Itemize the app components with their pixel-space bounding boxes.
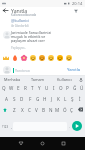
staticText: J (51, 96, 53, 102)
button[interactable]: X (18, 104, 26, 115)
button[interactable]: U (43, 83, 50, 93)
staticText: Kullanıcıadıburada (11, 13, 37, 17)
button[interactable]: V (33, 104, 40, 115)
staticText: L (64, 96, 67, 102)
staticText: @kullanici (11, 18, 30, 23)
button[interactable]: F (26, 93, 34, 104)
button[interactable]: Ğ (71, 83, 78, 93)
button[interactable]: İ (76, 93, 83, 104)
staticText: ?123 (2, 125, 9, 129)
staticText: E (17, 85, 20, 91)
staticText: X (21, 107, 24, 113)
button[interactable]: D (18, 93, 26, 104)
button[interactable]: J (48, 93, 55, 104)
button[interactable]: T (29, 83, 36, 93)
button[interactable]: Shift (0, 104, 10, 115)
button[interactable]: Back (10, 137, 32, 150)
button[interactable]: I (50, 83, 57, 93)
button[interactable]: Ö (61, 104, 68, 115)
staticText: H (43, 96, 47, 102)
staticText: Merhaba (4, 77, 21, 82)
button[interactable]: W (8, 83, 15, 93)
staticText: C (28, 107, 31, 113)
button[interactable]: C (26, 104, 33, 115)
button[interactable]: Kullanıcı (51, 76, 77, 83)
button[interactable]: Ş (69, 93, 76, 104)
staticText: ile Gönderildi (11, 24, 29, 28)
button[interactable]: Emoji (46, 53, 55, 62)
button[interactable]: O (57, 83, 64, 93)
staticText: . (69, 124, 70, 129)
button[interactable]: Ü (78, 83, 85, 93)
staticText: K (57, 96, 60, 102)
staticText: F (29, 96, 32, 102)
button[interactable]: Yanıtla (66, 66, 82, 74)
staticText: Z (13, 107, 16, 113)
staticText: 20:14 (72, 1, 83, 6)
staticText: N (49, 107, 53, 113)
staticText: Paylaşıyor... (11, 46, 27, 50)
button[interactable]: B (40, 104, 47, 115)
button[interactable]: Q (0, 83, 8, 93)
button[interactable]: Ç (68, 104, 75, 115)
button[interactable]: , (9, 122, 13, 131)
button[interactable]: Emoji (19, 53, 28, 62)
button[interactable]: S (10, 93, 18, 104)
button[interactable]: K (55, 93, 62, 104)
button[interactable]: Backspace (75, 104, 85, 115)
button[interactable]: Home (32, 137, 53, 150)
staticText: O (59, 85, 63, 91)
staticText: Jarimiuxle Sonucllarinizi muguk lo etkin… (11, 30, 53, 44)
button[interactable]: H (41, 93, 48, 104)
button[interactable]: Emoji (37, 53, 46, 62)
staticText: W (9, 85, 14, 91)
button[interactable]: Voice input (77, 76, 85, 83)
button[interactable]: ?123 (1, 122, 9, 131)
staticText: Ç (70, 107, 73, 113)
staticText: Ğ (73, 85, 77, 91)
staticText: Y (38, 85, 41, 91)
staticText: T (31, 85, 34, 91)
button[interactable]: Emoji (1, 53, 10, 62)
staticText: Ü (80, 85, 84, 91)
staticText: B (42, 107, 45, 113)
staticText: M (55, 107, 60, 113)
button[interactable]: Y (36, 83, 43, 93)
staticText: G (36, 96, 40, 102)
staticText: Yanıtınızı (15, 68, 31, 73)
staticText: İ (79, 96, 81, 102)
button[interactable]: Back (2, 7, 9, 14)
staticText: S (13, 96, 16, 102)
button[interactable]: Tamam (25, 76, 51, 83)
staticText: Yanıtla (11, 7, 28, 14)
staticText: Yanıtla (67, 67, 81, 73)
button[interactable]: Emoji (10, 53, 19, 62)
button[interactable]: Emoji (28, 53, 37, 62)
staticText: R (24, 85, 27, 91)
button[interactable]: R (22, 83, 29, 93)
staticText: D (20, 96, 24, 102)
staticText: , (11, 124, 12, 129)
staticText: Kullanıcı (57, 77, 72, 82)
button[interactable]: P (64, 83, 71, 93)
button[interactable]: Z (10, 104, 18, 115)
button[interactable]: M (54, 104, 61, 115)
button[interactable]: G (34, 93, 41, 104)
button[interactable]: E (15, 83, 22, 93)
button[interactable]: Recents (53, 137, 74, 150)
button[interactable]: Merhaba (0, 76, 25, 83)
button[interactable]: L (62, 93, 69, 104)
button[interactable]: Send (72, 121, 82, 131)
button[interactable]: Emoji (55, 53, 64, 62)
staticText: Ş (71, 96, 74, 102)
staticText: U (45, 85, 49, 91)
button[interactable]: A (2, 93, 10, 104)
button[interactable]: N (47, 104, 54, 115)
staticText: P (66, 85, 69, 91)
staticText: A (5, 96, 8, 102)
button[interactable]: Filter (72, 7, 79, 14)
button[interactable]: Emoji (64, 53, 73, 62)
staticText: Q (2, 85, 6, 91)
